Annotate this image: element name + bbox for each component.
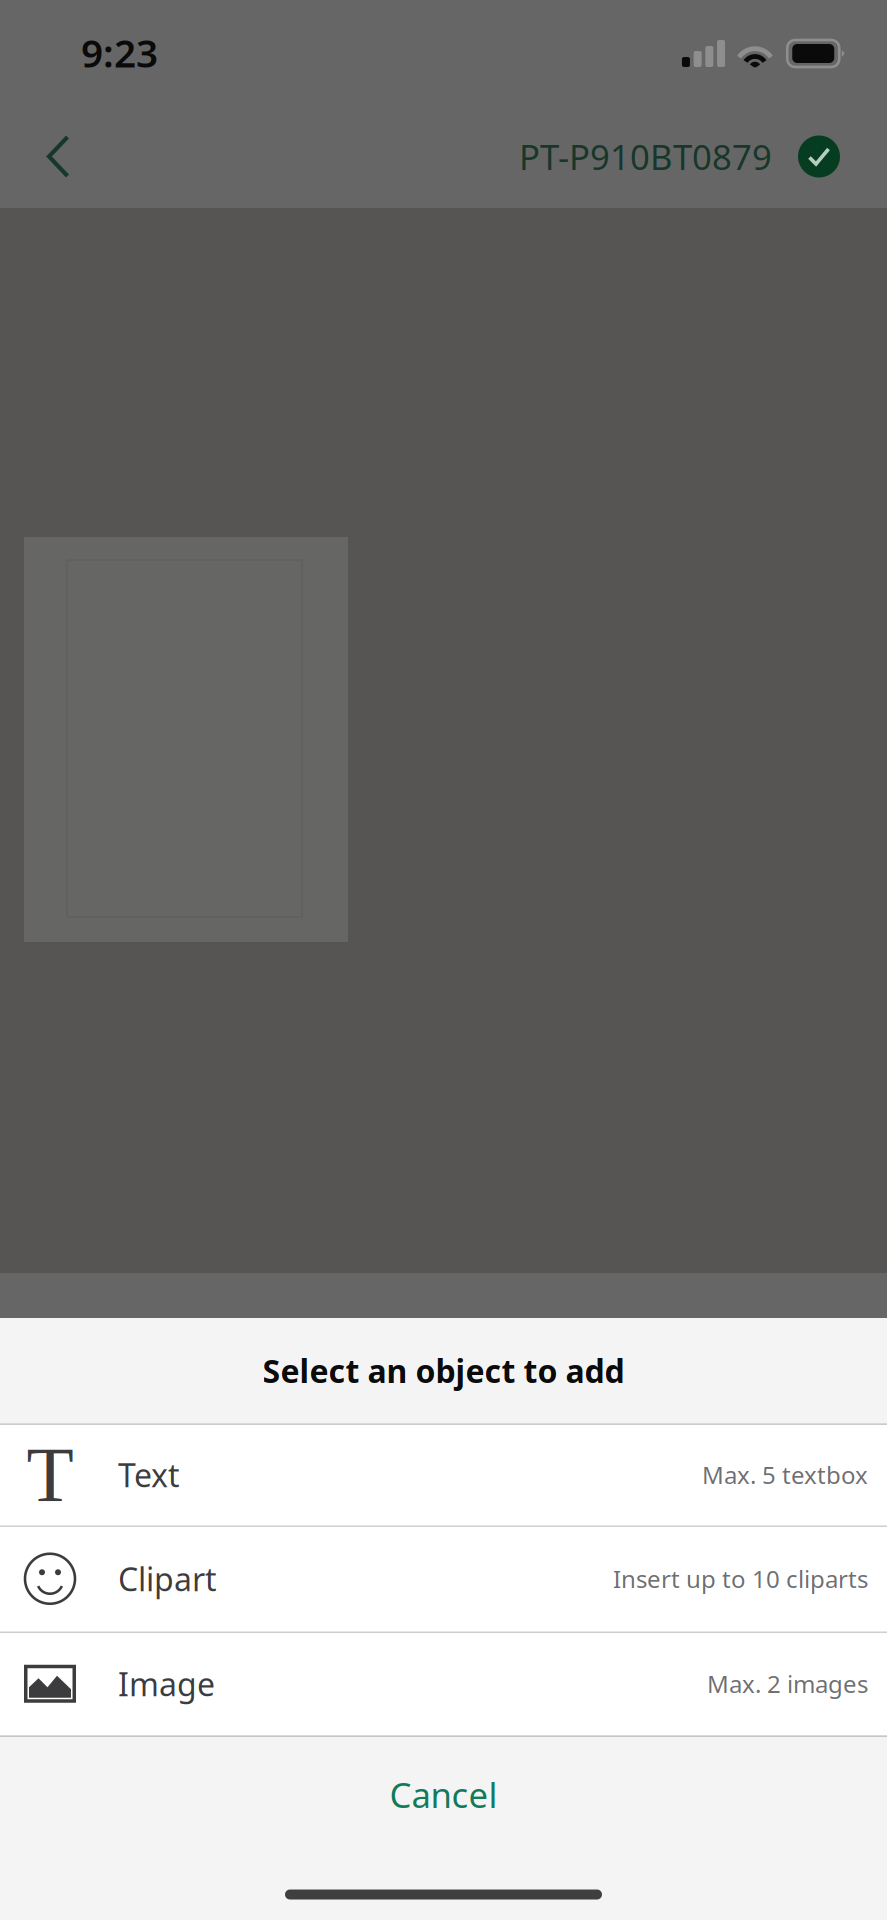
button[interactable]: Back <box>15 113 101 199</box>
staticText: Max. 2 images <box>707 1668 868 1700</box>
button[interactable]: PT-P910BT0879 <box>519 113 887 199</box>
staticText: Insert up to 10 cliparts <box>613 1563 868 1595</box>
button[interactable]: Clipart <box>0 1526 887 1631</box>
staticText: 9:23 <box>81 27 158 78</box>
staticText: Image <box>118 1662 215 1705</box>
staticText: T <box>26 1432 73 1517</box>
button[interactable]: T <box>0 1424 887 1525</box>
staticText: Select an object to add <box>262 1349 624 1392</box>
button[interactable]: Cancel <box>0 1736 887 1852</box>
staticText: Clipart <box>118 1557 217 1600</box>
staticText: Cancel <box>389 1771 497 1817</box>
staticText: Text <box>118 1453 180 1496</box>
staticText: Max. 5 textbox <box>702 1459 868 1491</box>
button[interactable]: Image <box>0 1632 887 1735</box>
staticText: PT-P910BT0879 <box>519 133 772 179</box>
